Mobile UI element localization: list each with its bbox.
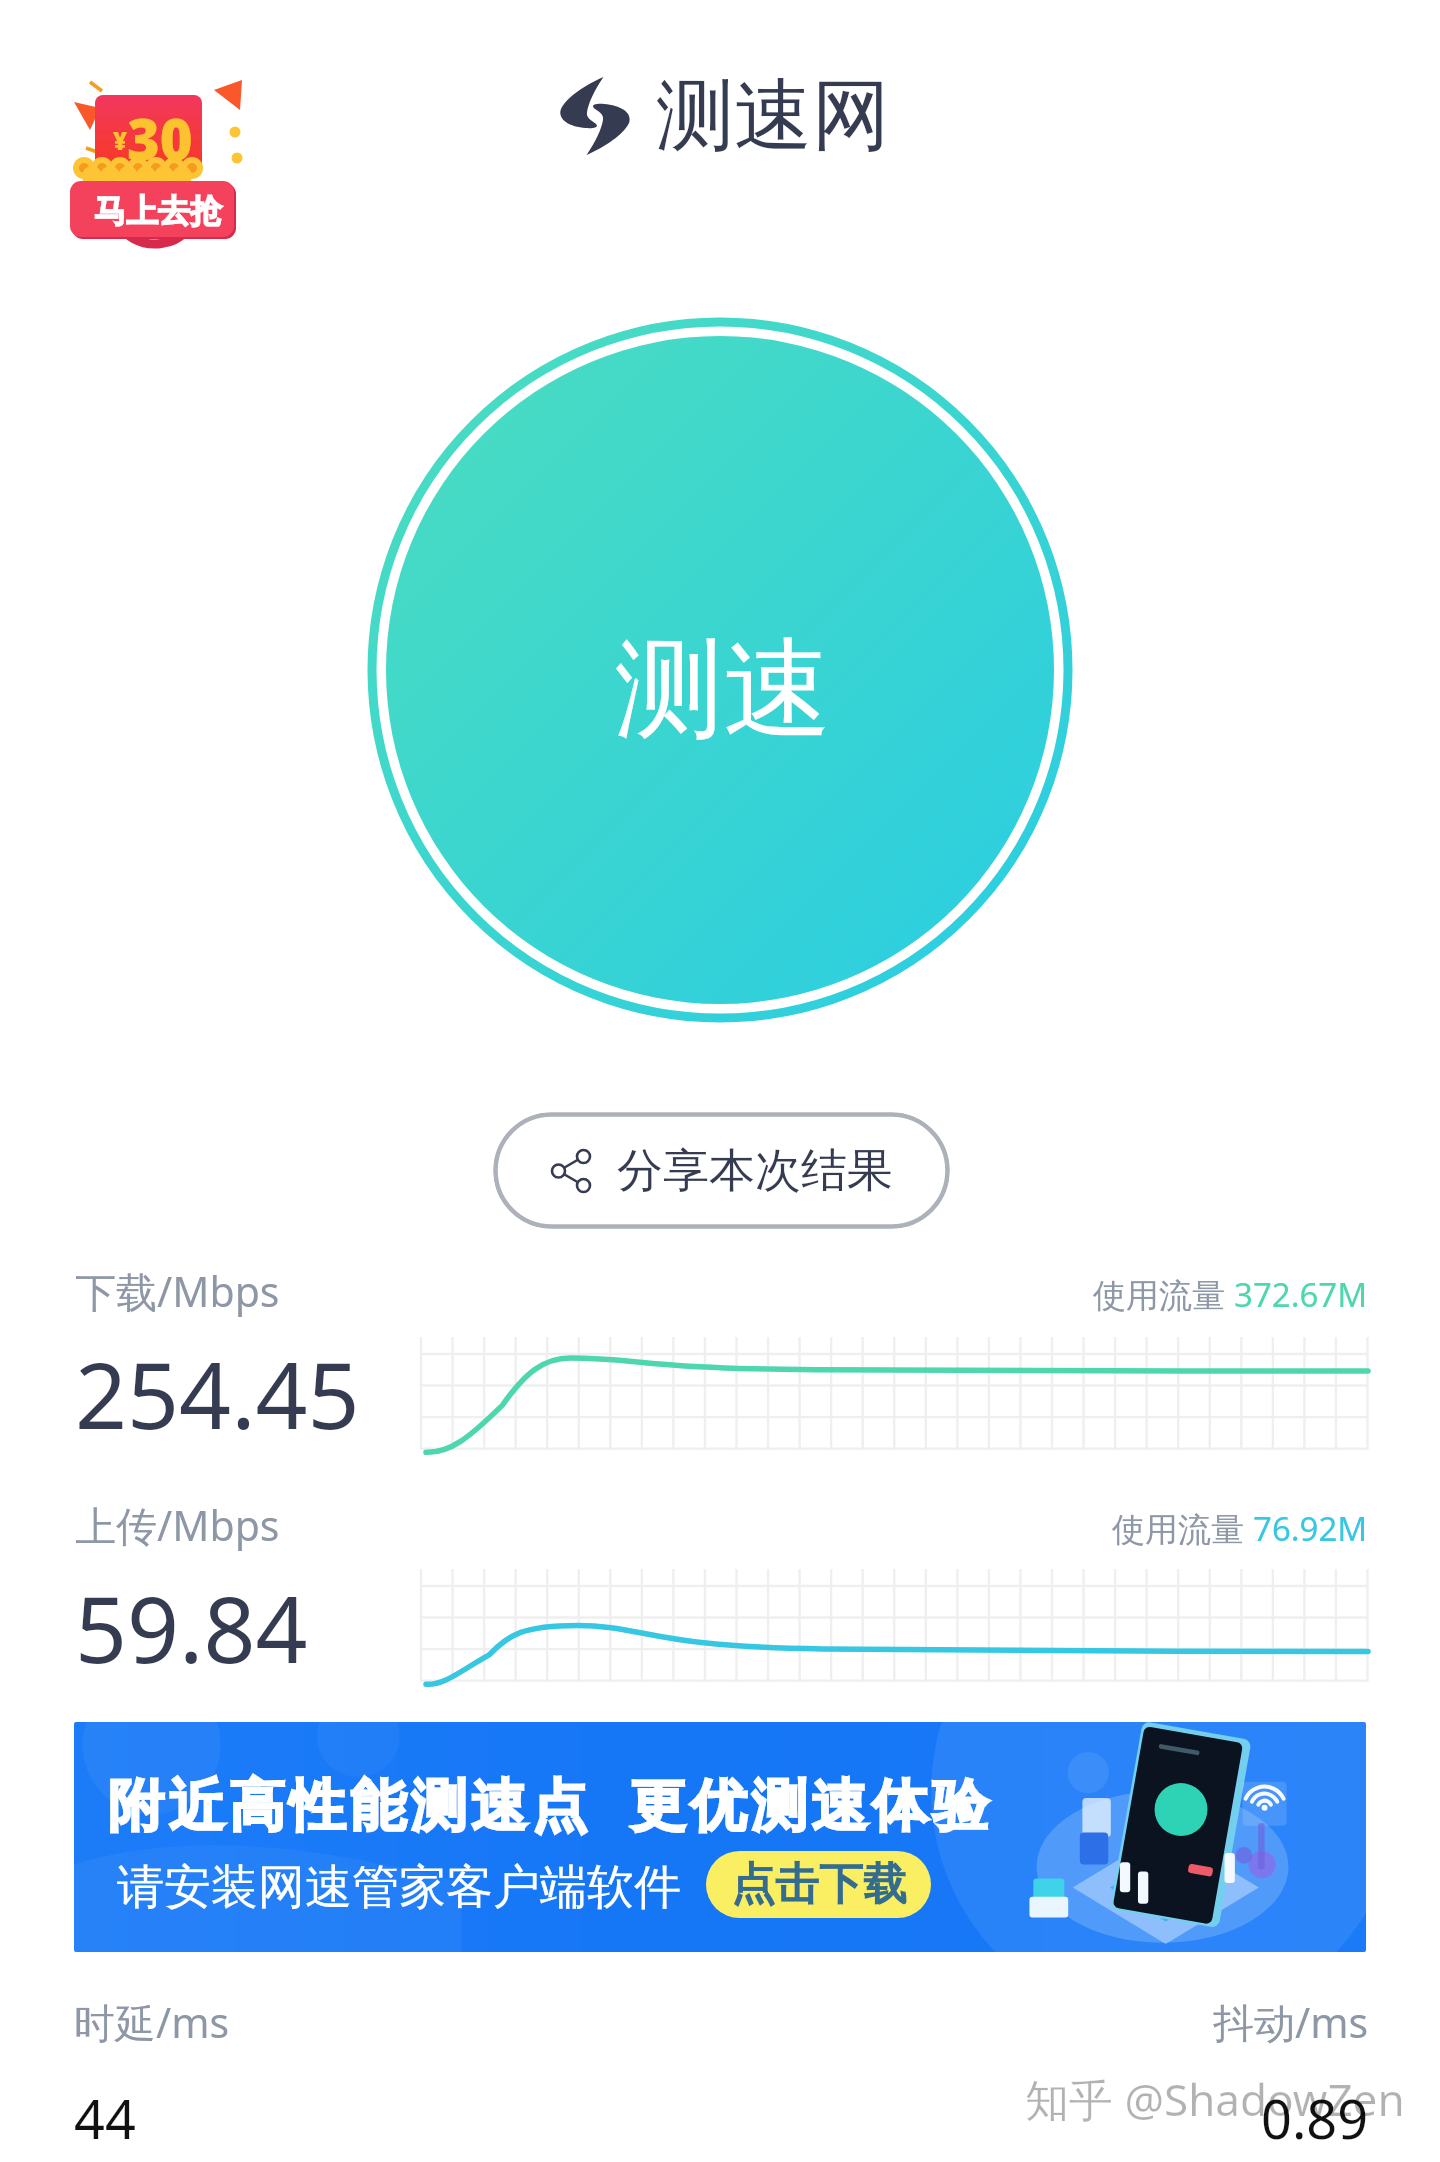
staticText: 马上去抢 [94,191,222,231]
other: 测速网 logo [560,77,630,155]
staticText: 30 [127,100,193,176]
staticText: 254.45 [75,1332,360,1456]
staticText: 抖动/ms [1213,1994,1369,2050]
staticText: 时延/ms [74,1994,230,2050]
staticText: 0.89 [1261,2081,1369,2155]
staticText: 使用流量 [1112,1506,1253,1551]
button[interactable]: 分享本次结果 [493,1112,950,1229]
button[interactable]: 测速 [364,314,1076,1026]
staticText: 点击下载 [731,1857,907,1912]
staticText: 44 [74,2081,136,2155]
staticText: 上传/Mbps [75,1497,280,1553]
button[interactable]: 附近高性能测速点 更优测速体验 点击下载 [74,1722,1366,1952]
button[interactable]: 点击下载 [706,1851,931,1918]
staticText: 使用流量 [1093,1272,1234,1317]
staticText: 附近高性能测速点 更优测速体验 [108,1765,994,1841]
staticText: 372.67M [1234,1272,1368,1317]
staticText: 59.84 [75,1566,308,1690]
staticText: 下载/Mbps [75,1263,280,1319]
staticText: 分享本次结果 [617,1142,893,1200]
staticText: 知乎 @ShadowZen [1025,2069,1405,2129]
button[interactable]: 领取 30 元优惠券 [62,60,252,265]
staticText: 76.92M [1253,1506,1368,1551]
staticText: 测速 [615,622,831,758]
staticText: ¥ [113,124,128,157]
staticText: 请安装网速管家客户端软件 [117,1858,681,1917]
staticText: 测速网 [656,67,890,165]
